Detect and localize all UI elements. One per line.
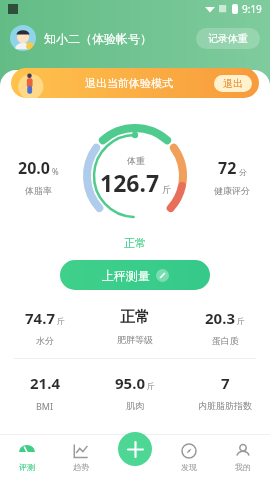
button[interactable]: 退出当前体验模式 [11, 68, 259, 98]
staticText: 21.4 [30, 373, 60, 393]
button[interactable]: 我的 [216, 434, 270, 480]
button[interactable]: 退出 [214, 75, 252, 92]
staticText: 斤 [162, 184, 171, 195]
staticText: 记录体重 [208, 32, 248, 45]
staticText: 分 [239, 167, 247, 177]
button[interactable]: 74.7 [0, 308, 90, 346]
staticText: 知小二（体验帐号） [44, 31, 152, 46]
staticText: 退出当前体验模式 [85, 76, 173, 90]
button[interactable]: 上秤测量 [60, 260, 210, 290]
staticText: 斤 [237, 316, 245, 326]
button[interactable]: 记录体重 [196, 28, 260, 49]
staticText: 7 [221, 373, 230, 393]
staticText: 体重 [127, 155, 145, 166]
staticText: 蛋白质 [212, 335, 239, 346]
staticText: 20.0 [18, 157, 50, 179]
staticText: 肥胖等级 [117, 334, 153, 345]
staticText: 体脂率 [25, 185, 52, 196]
staticText: 95.0 [115, 373, 145, 393]
button[interactable]: 趋势 [54, 434, 108, 480]
button[interactable]: 21.4 [0, 373, 90, 412]
staticText: 评测 [19, 462, 35, 472]
button[interactable]: 95.0 [90, 373, 180, 411]
button[interactable]: 正常 [90, 308, 180, 345]
staticText: 健康评分 [214, 185, 250, 196]
staticText: 正常 [124, 236, 146, 250]
staticText: 我的 [235, 462, 251, 472]
staticText: % [52, 166, 59, 177]
button[interactable]: 发现 [162, 434, 216, 480]
button[interactable]: 7 [180, 373, 270, 411]
staticText: 内脏脂肪指数 [198, 400, 252, 411]
staticText: BMI [36, 400, 54, 412]
staticText: 9:19 [242, 2, 262, 16]
staticText: 126.7 [100, 167, 160, 198]
staticText: 斤 [147, 381, 155, 391]
button[interactable]: 评测 [0, 434, 54, 480]
staticText: 退出 [223, 77, 243, 90]
button[interactable]: Profile avatar [10, 25, 36, 51]
staticText: 水分 [36, 335, 54, 346]
staticText: 发现 [181, 462, 197, 472]
staticText: 上秤测量 [102, 268, 150, 283]
staticText: 趋势 [73, 462, 89, 472]
staticText: 肌肉 [126, 400, 144, 411]
staticText: 斤 [57, 316, 65, 326]
staticText: 20.3 [205, 308, 235, 328]
button[interactable]: Add record [118, 432, 152, 466]
staticText: 74.7 [25, 308, 55, 328]
button[interactable]: 20.3 [180, 308, 270, 346]
staticText: 正常 [120, 308, 150, 327]
staticText: 72 [218, 157, 237, 179]
